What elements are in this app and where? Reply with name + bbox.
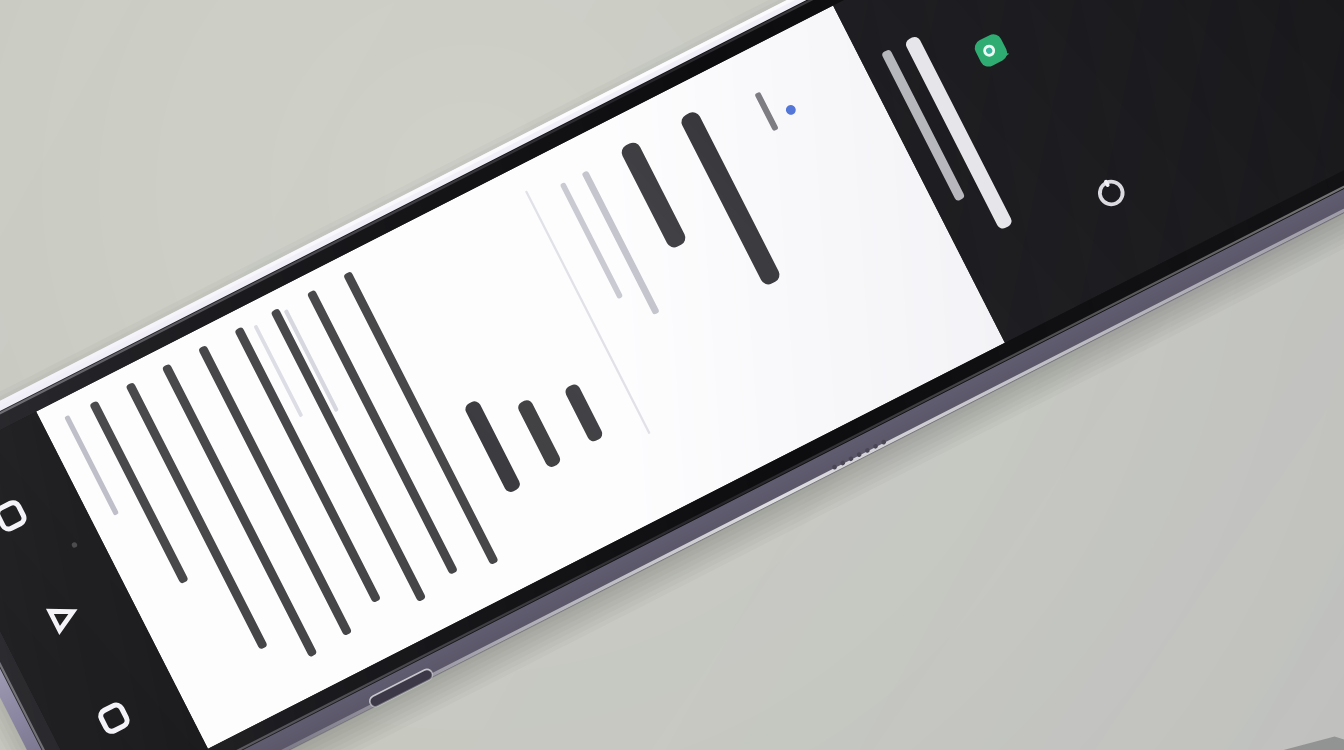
button[interactable]: Android phone on desk showing article ap… xyxy=(0,0,1344,750)
